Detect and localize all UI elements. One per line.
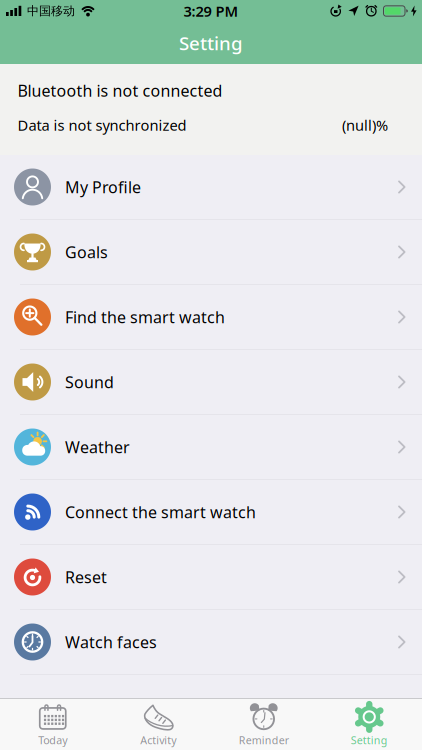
button[interactable]: Find the smart watch xyxy=(0,285,422,350)
button[interactable]: My Profile xyxy=(0,155,422,220)
button[interactable]: Weather xyxy=(0,415,422,480)
button[interactable]: Goals xyxy=(0,220,422,285)
button[interactable]: Watch faces xyxy=(0,610,422,675)
staticText: Today xyxy=(38,733,67,747)
button[interactable]: Activity xyxy=(105,700,211,749)
staticText: (null)% xyxy=(342,115,388,135)
staticText: 中国移动 xyxy=(27,4,75,18)
staticText: Sound xyxy=(65,371,114,393)
button[interactable]: Today xyxy=(0,700,105,749)
button[interactable]: Reminder xyxy=(211,700,316,749)
button[interactable]: Sound xyxy=(0,350,422,415)
button[interactable]: Connect the smart watch xyxy=(0,480,422,545)
button[interactable]: Setting xyxy=(316,700,422,749)
staticText: Connect the smart watch xyxy=(65,501,256,523)
staticText: Watch faces xyxy=(65,631,157,653)
staticText: Weather xyxy=(65,436,130,458)
staticText: Reset xyxy=(65,566,107,588)
staticText: Reminder xyxy=(239,733,289,747)
staticText: Activity xyxy=(140,733,176,747)
staticText: Bluetooth is not connected xyxy=(17,80,222,101)
staticText: 3:29 PM xyxy=(183,1,238,21)
staticText: Find the smart watch xyxy=(65,306,225,328)
staticText: Data is not synchronized xyxy=(17,115,186,135)
staticText: My Profile xyxy=(65,176,141,198)
staticText: Setting xyxy=(179,31,243,55)
button[interactable]: Reset xyxy=(0,545,422,610)
staticText: Goals xyxy=(65,241,108,263)
staticText: Setting xyxy=(351,733,388,747)
